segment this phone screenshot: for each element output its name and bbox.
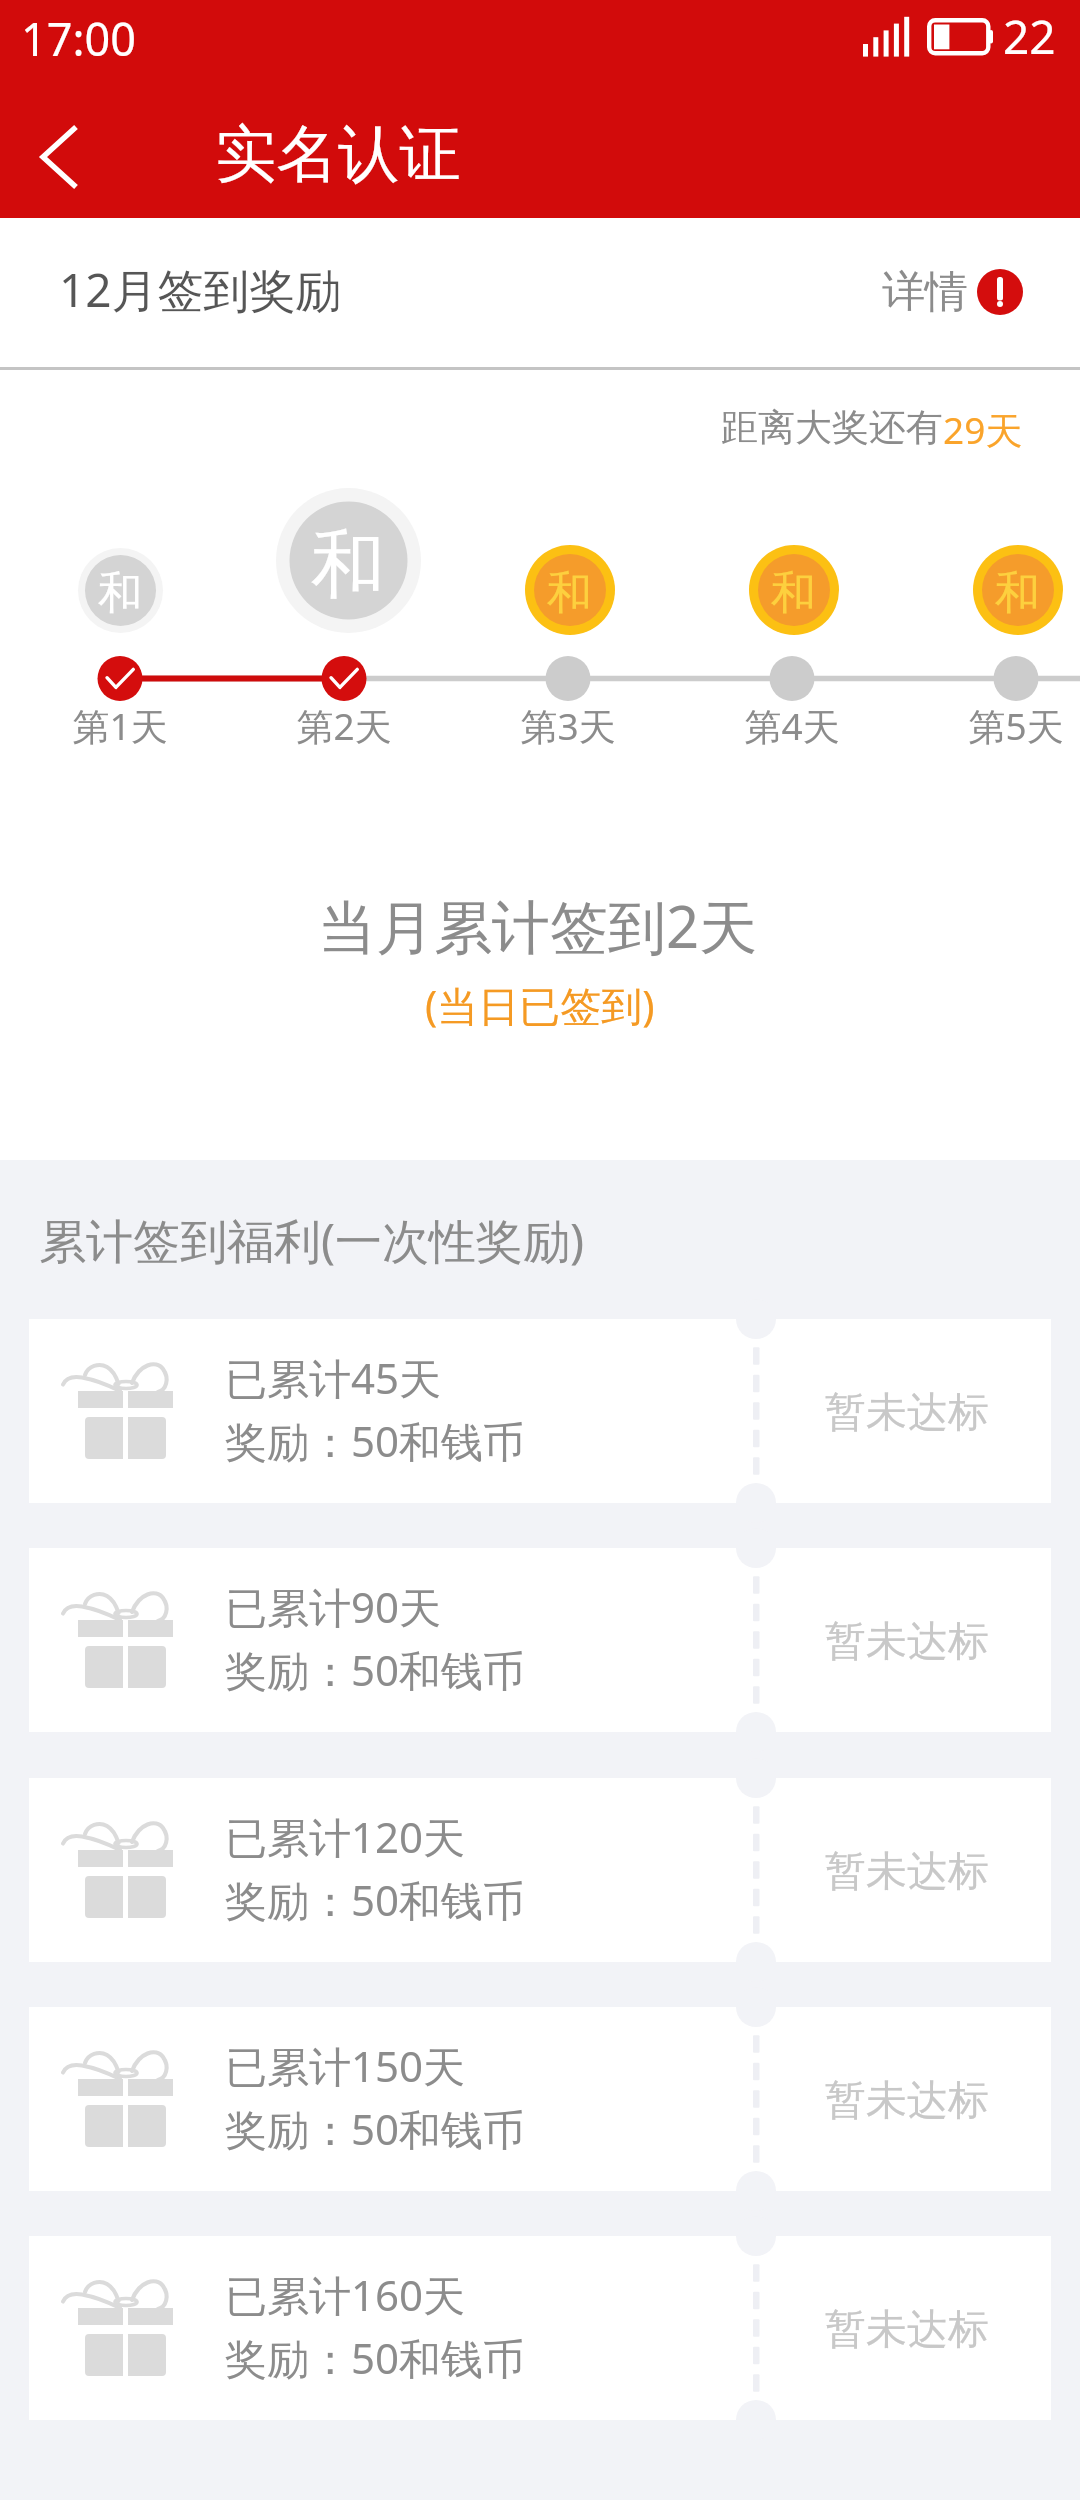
staticText: 和	[311, 518, 386, 612]
staticText: 距离大奖还有	[721, 404, 943, 451]
staticText: 暂未达标	[825, 2304, 989, 2356]
staticText: 累计签到福利(一次性奖励)	[39, 1208, 585, 1272]
staticText: 暂未达标	[825, 1616, 989, 1668]
staticText: 和	[771, 564, 817, 621]
staticText: 暂未达标	[825, 1387, 989, 1439]
staticText: 和	[547, 564, 593, 621]
button[interactable]: 已累计160天	[29, 2236, 1051, 2420]
staticText: 第1天	[72, 700, 168, 751]
staticText: 奖励：50和钱币	[225, 1871, 526, 1928]
staticText: 详情	[882, 265, 968, 319]
staticText: 第5天	[968, 700, 1064, 751]
staticText: 已累计120天	[225, 1808, 466, 1865]
staticText: 已累计45天	[225, 1349, 442, 1406]
staticText: 第3天	[520, 700, 616, 751]
button[interactable]: 已累计150天	[29, 2007, 1051, 2191]
staticText: 29天	[943, 404, 1023, 455]
staticText: 22	[1003, 5, 1056, 68]
staticText: 已累计90天	[225, 1578, 442, 1635]
staticText: 实名认证	[215, 116, 461, 193]
staticText: 第2天	[296, 700, 392, 751]
staticText: 已累计150天	[225, 2037, 466, 2094]
button[interactable]: 已累计90天	[29, 1548, 1051, 1732]
button[interactable]: 已累计120天	[29, 1778, 1051, 1962]
staticText: 暂未达标	[825, 2075, 989, 2127]
button[interactable]: 详情	[882, 265, 1023, 319]
staticText: 12月签到奖励	[59, 258, 342, 321]
staticText: 和	[98, 565, 143, 621]
button[interactable]: 已累计45天	[29, 1319, 1051, 1503]
staticText: (当日已签到)	[425, 977, 655, 1033]
staticText: 奖励：50和钱币	[225, 2329, 526, 2386]
button[interactable]: Back	[0, 90, 130, 218]
staticText: 暂未达标	[825, 1846, 989, 1898]
staticText: 当月累计签到2天	[318, 886, 758, 965]
staticText: 17:00	[21, 8, 137, 69]
staticText: 奖励：50和钱币	[225, 2100, 526, 2157]
staticText: 第4天	[744, 700, 840, 751]
staticText: 已累计160天	[225, 2266, 466, 2323]
staticText: 和	[995, 564, 1041, 621]
staticText: 奖励：50和钱币	[225, 1412, 526, 1469]
staticText: 奖励：50和钱币	[225, 1641, 526, 1698]
